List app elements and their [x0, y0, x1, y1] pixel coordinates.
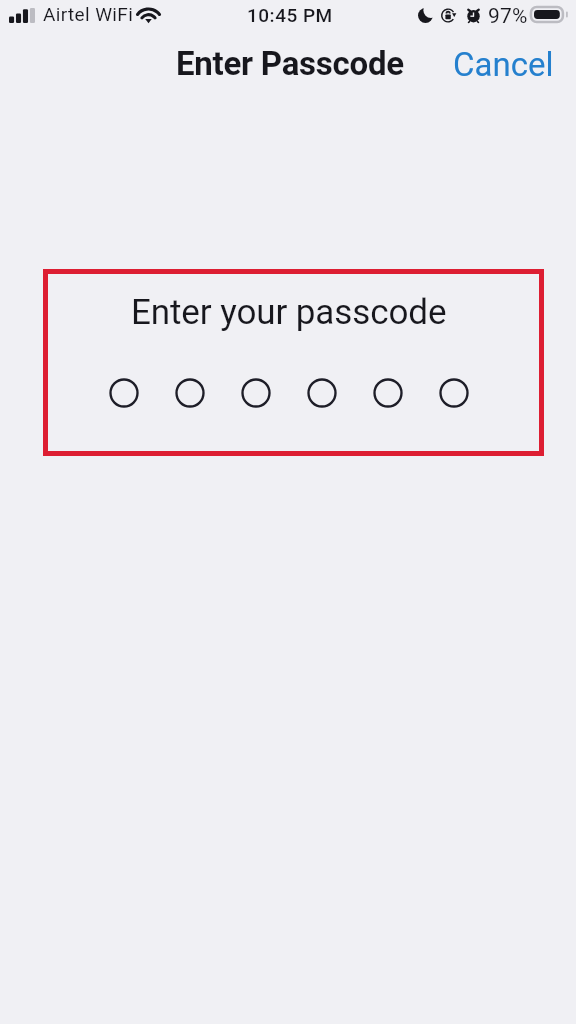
staticText: Enter Passcode — [176, 44, 404, 83]
staticText: 97% — [488, 4, 528, 29]
other: Battery 97 percent — [530, 6, 568, 23]
other: Do Not Disturb — [418, 8, 433, 23]
other: Alarm — [466, 7, 481, 23]
staticText: Airtel WiFi — [43, 3, 134, 25]
button[interactable]: Passcode entry field — [109, 378, 469, 408]
staticText: Enter your passcode — [131, 292, 447, 333]
staticText: 10:45 PM — [247, 4, 333, 26]
staticText: Cancel — [453, 45, 554, 84]
button[interactable]: Cancel — [431, 35, 576, 94]
other: Rotation Lock — [441, 8, 458, 23]
